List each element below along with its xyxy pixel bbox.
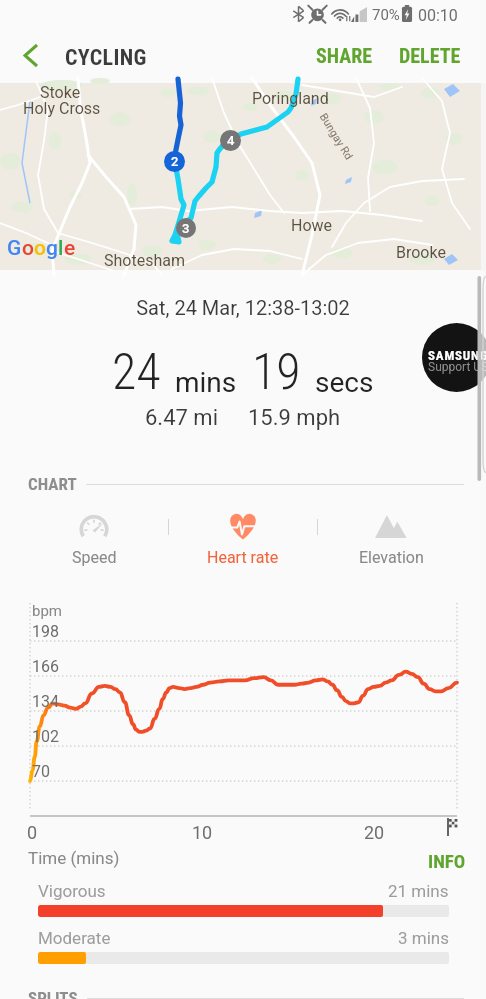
staticText: Stoke — [40, 83, 81, 102]
button[interactable]: Elevation — [339, 509, 443, 567]
staticText: e — [64, 236, 76, 261]
staticText: Poringland — [252, 89, 329, 108]
staticText: Time (mins) — [28, 848, 120, 868]
staticText: bpm — [32, 602, 62, 620]
staticText: Heart rate — [207, 548, 279, 567]
staticText: 19 — [252, 343, 301, 402]
staticText: Speed — [72, 548, 117, 567]
staticText: 21 mins — [388, 881, 449, 901]
staticText: Holy Cross — [23, 99, 101, 118]
staticText: Bungay Rd — [317, 111, 355, 162]
staticText: secs — [315, 366, 374, 399]
button[interactable]: Moderate — [38, 928, 449, 964]
staticText: Howe — [291, 216, 333, 235]
staticText: g — [46, 236, 58, 261]
staticText: 166 — [32, 657, 59, 676]
staticText: 3 mins — [398, 928, 449, 948]
staticText: mins — [175, 366, 237, 399]
staticText: 24 — [112, 343, 161, 402]
staticText: o — [22, 236, 34, 261]
staticText: G — [7, 236, 22, 261]
staticText: 3 — [182, 221, 190, 236]
staticText: Sat, 24 Mar, 12:38-13:02 — [0, 296, 486, 319]
button[interactable]: Heart rate — [191, 509, 295, 567]
staticText: Shotesham — [104, 251, 185, 270]
button[interactable]: Vigorous — [38, 881, 449, 917]
staticText: 70 — [32, 762, 50, 781]
staticText: Brooke — [396, 243, 446, 262]
button[interactable]: Samsung Support — [422, 323, 486, 392]
staticText: 15.9 mph — [248, 405, 341, 431]
staticText: 10 — [192, 822, 213, 843]
staticText: 4 — [227, 133, 235, 148]
staticText: 102 — [32, 727, 59, 746]
staticText: SPLITS — [28, 988, 78, 999]
button[interactable]: INFO — [418, 844, 476, 878]
staticText: DELETE — [399, 44, 461, 67]
staticText: SAMSUNG — [428, 348, 486, 363]
button[interactable]: Back — [7, 32, 54, 79]
staticText: CHART — [28, 474, 77, 494]
staticText: 00:10 — [418, 6, 458, 25]
button[interactable]: Speed — [42, 509, 146, 567]
button[interactable]: DELETE — [389, 36, 471, 75]
staticText: Moderate — [38, 928, 111, 948]
staticText: 134 — [32, 692, 59, 711]
staticText: 198 — [32, 622, 59, 641]
staticText: CYCLING — [65, 45, 147, 71]
staticText: SHARE — [316, 44, 373, 67]
staticText: l — [58, 236, 64, 261]
staticText: 6.47 mi — [145, 405, 218, 431]
staticText: Elevation — [359, 548, 424, 567]
staticText: 0 — [27, 822, 38, 843]
staticText: 2 — [171, 154, 179, 169]
staticText: 20 — [364, 822, 385, 843]
button[interactable]: SHARE — [306, 36, 383, 75]
button[interactable]: Route map — [0, 83, 486, 270]
staticText: Support USA — [428, 360, 486, 374]
staticText: Vigorous — [38, 881, 106, 901]
staticText: INFO — [428, 850, 466, 872]
staticText: o — [34, 236, 46, 261]
staticText: 70% — [372, 6, 400, 24]
